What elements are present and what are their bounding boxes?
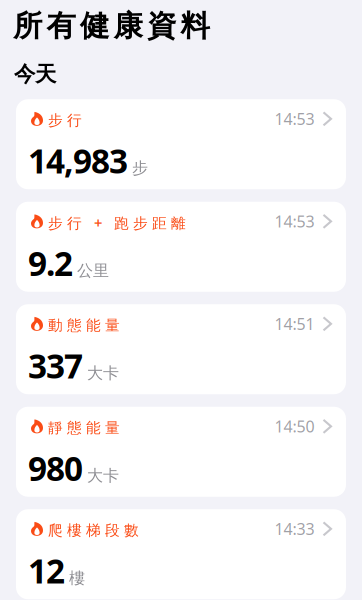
button[interactable]: 動態能量	[16, 304, 346, 394]
staticText: 爬樓梯段數	[48, 521, 139, 539]
staticText: 所有健康資料	[13, 8, 209, 44]
staticText: 980	[28, 446, 83, 490]
button[interactable]: 步行 + 跑步距離	[16, 202, 346, 292]
staticText: 337	[28, 343, 83, 388]
staticText: 大卡	[87, 363, 119, 383]
staticText: 14,983	[28, 138, 128, 183]
staticText: 公里	[77, 261, 109, 281]
staticText: 步行 + 跑步距離	[48, 213, 186, 233]
staticText: 12	[28, 548, 65, 593]
staticText: 步	[132, 158, 148, 178]
staticText: 14:50	[274, 416, 314, 437]
staticText: 14:53	[274, 211, 314, 232]
button[interactable]: 步行	[16, 99, 346, 189]
button[interactable]: 爬樓梯段數	[16, 509, 346, 599]
staticText: 樓	[69, 568, 85, 588]
staticText: 靜態能量	[48, 419, 120, 437]
staticText: 今天	[14, 61, 56, 87]
staticText: 9.2	[28, 241, 73, 285]
staticText: 14:53	[274, 108, 314, 129]
staticText: 大卡	[87, 466, 119, 486]
button[interactable]: 靜態能量	[16, 407, 346, 497]
staticText: 14:33	[274, 518, 314, 539]
staticText: 步行	[48, 111, 82, 129]
staticText: 動態能量	[48, 316, 120, 334]
staticText: 14:51	[274, 313, 314, 334]
